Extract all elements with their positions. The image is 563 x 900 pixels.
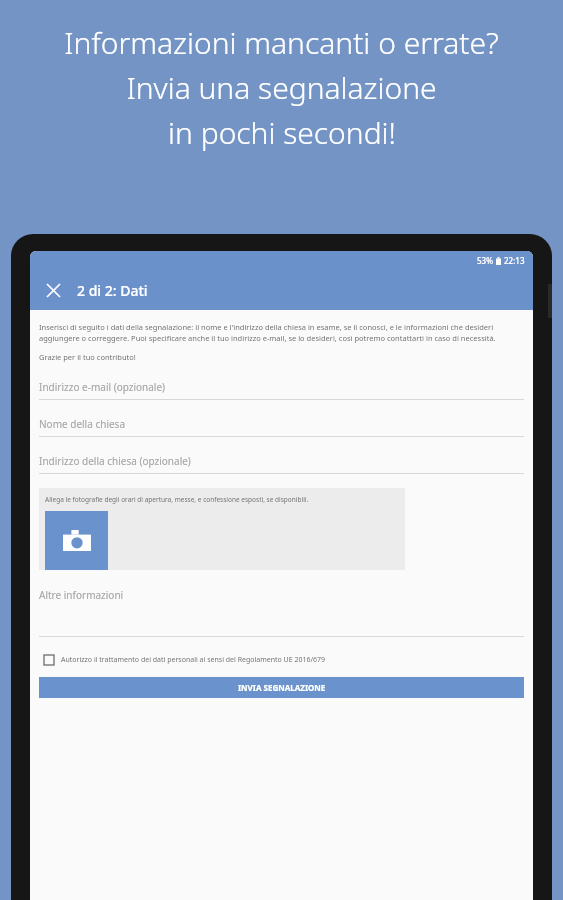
staticText: Altre informazioni <box>39 588 124 602</box>
staticText: 2 di 2: Dati <box>77 281 148 300</box>
staticText: Allega le fotografie degli orari di aper… <box>45 495 309 504</box>
button[interactable]: Scatta foto <box>45 511 108 570</box>
staticText: Informazioni mancanti o errate? <box>64 22 499 63</box>
staticText: Indirizzo e-mail (opzionale) <box>39 380 166 394</box>
button[interactable]: Indirizzo della chiesa (opzionale) <box>39 454 524 474</box>
button[interactable]: Indirizzo e-mail (opzionale) <box>39 380 524 400</box>
staticText: in pochi secondi! <box>168 112 396 153</box>
staticText: Nome della chiesa <box>39 417 125 431</box>
staticText: 22:13 <box>504 255 525 266</box>
staticText: Inserisci di seguito i dati della segnal… <box>39 322 524 343</box>
staticText: Invia una segnalazione <box>126 67 437 108</box>
button[interactable]: Nome della chiesa <box>39 417 524 437</box>
button[interactable]: INVIA SEGNALAZIONE <box>39 677 524 698</box>
staticText: 53% <box>477 255 493 266</box>
staticText: Autorizzo il trattamento dei dati person… <box>61 655 326 665</box>
staticText: Indirizzo della chiesa (opzionale) <box>39 454 191 468</box>
button[interactable]: Chiudi <box>38 275 68 305</box>
button[interactable]: Autorizzo il trattamento dei dati person… <box>39 655 524 665</box>
staticText: Grazie per il tuo contributo! <box>39 352 136 362</box>
staticText: INVIA SEGNALAZIONE <box>238 682 326 693</box>
